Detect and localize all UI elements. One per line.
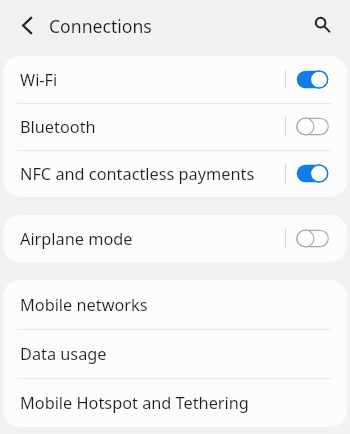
- button[interactable]: Airplane mode: [3, 215, 347, 262]
- button[interactable]: Bluetooth switch: [296, 117, 329, 136]
- staticText: Data usage: [20, 343, 107, 365]
- button[interactable]: Data usage: [3, 329, 347, 378]
- staticText: NFC and contactless payments: [20, 163, 255, 185]
- button[interactable]: NFC and contactless payments: [3, 150, 347, 197]
- button[interactable]: Search: [300, 2, 344, 46]
- button[interactable]: Airplane mode switch: [296, 229, 329, 248]
- button[interactable]: Wi-Fi switch: [296, 70, 329, 89]
- button[interactable]: Wi-Fi: [3, 56, 347, 103]
- button[interactable]: Mobile Hotspot and Tethering: [3, 378, 347, 427]
- staticText: Bluetooth: [20, 116, 96, 138]
- staticText: Mobile networks: [20, 294, 148, 316]
- staticText: Connections: [49, 14, 152, 38]
- button[interactable]: Mobile networks: [3, 280, 347, 329]
- staticText: Wi-Fi: [20, 69, 58, 91]
- staticText: Airplane mode: [20, 228, 133, 250]
- button[interactable]: NFC and contactless payments switch: [296, 164, 329, 183]
- button[interactable]: Bluetooth: [3, 103, 347, 150]
- staticText: Mobile Hotspot and Tethering: [20, 392, 249, 414]
- button[interactable]: Back: [5, 3, 49, 47]
